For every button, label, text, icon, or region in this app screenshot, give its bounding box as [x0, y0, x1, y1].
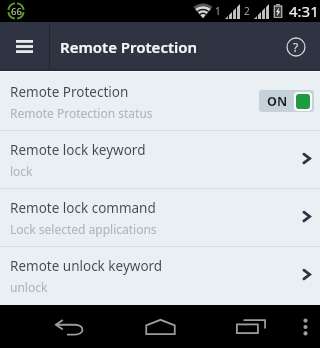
button[interactable]: Remote lock command — [0, 189, 320, 246]
button[interactable]: Open navigation menu — [0, 22, 49, 71]
staticText: Remote Protection — [60, 37, 198, 57]
button[interactable]: Help — [274, 25, 318, 69]
staticText: unlock — [10, 279, 48, 295]
button[interactable]: Remote unlock keyword — [0, 247, 320, 304]
button[interactable]: Remote lock keyword — [0, 131, 320, 188]
staticText: Remote lock command — [10, 199, 156, 217]
staticText: lock — [10, 163, 33, 179]
staticText: Lock selected applications — [10, 221, 157, 237]
staticText: 2 — [244, 4, 250, 18]
button[interactable]: Remote Protection — [0, 73, 320, 130]
staticText: Remote Protection status — [10, 105, 153, 121]
staticText: 66 — [11, 5, 22, 18]
staticText: 4:31 — [289, 1, 319, 21]
staticText: 1 — [215, 4, 221, 18]
button[interactable]: More options — [290, 305, 320, 348]
staticText: ON — [267, 93, 288, 110]
staticText: ? — [293, 39, 299, 55]
button[interactable]: ON — [259, 90, 314, 112]
staticText: Remote lock keyword — [10, 141, 146, 159]
staticText: Remote Protection — [10, 83, 129, 101]
button[interactable]: Recent apps — [207, 305, 295, 348]
button[interactable]: Back — [26, 305, 114, 348]
button[interactable]: Home — [116, 305, 204, 348]
staticText: Remote unlock keyword — [10, 257, 163, 275]
